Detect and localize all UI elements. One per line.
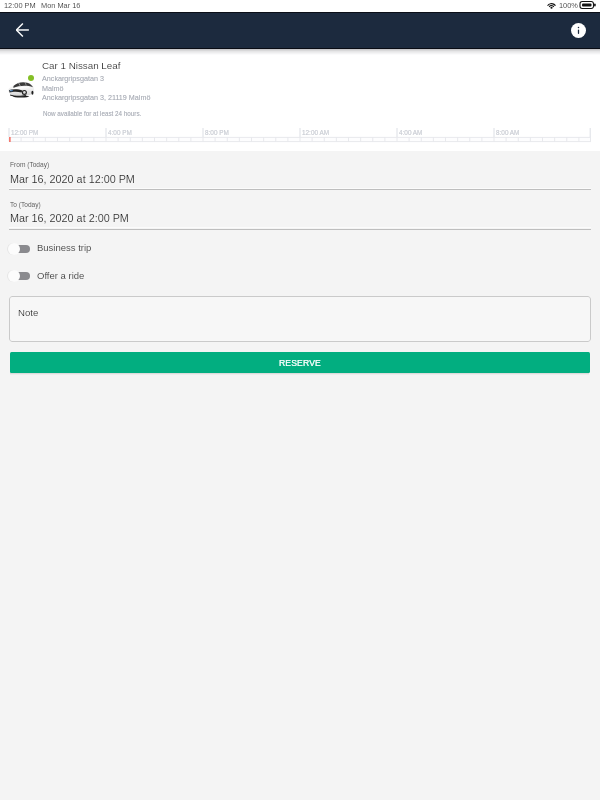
button[interactable]: Note	[9, 296, 591, 342]
button[interactable]: Business trip	[5, 239, 120, 259]
staticText: Offer a ride	[37, 270, 85, 281]
staticText: Mon Mar 16	[41, 1, 81, 9]
staticText: 12:00 PM	[11, 129, 39, 136]
staticText: 8:00 AM	[496, 129, 520, 136]
button[interactable]: Back	[8, 16, 36, 44]
button[interactable]: From (Today)	[9, 157, 591, 190]
button[interactable]: To (Today)	[9, 197, 591, 230]
button[interactable]: RESERVE	[10, 352, 590, 373]
staticText: To (Today)	[10, 201, 41, 208]
staticText: Business trip	[37, 242, 92, 253]
staticText: Note	[18, 307, 39, 318]
staticText: Anckargripsgatan 3, 21119 Malmö	[42, 93, 151, 101]
button[interactable]: Info	[565, 17, 591, 43]
staticText: 8:00 PM	[205, 129, 229, 136]
staticText: 12:00 PM	[4, 1, 36, 9]
staticText: 12:00 AM	[302, 129, 330, 136]
staticText: RESERVE	[279, 358, 321, 368]
staticText: From (Today)	[10, 161, 50, 168]
button[interactable]: Offer a ride	[5, 266, 120, 286]
staticText: Mar 16, 2020 at 12:00 PM	[10, 173, 135, 185]
staticText: 4:00 AM	[399, 129, 423, 136]
staticText: Anckargripsgatan 3	[42, 74, 104, 82]
staticText: Malmö	[42, 84, 64, 92]
staticText: 100%	[559, 1, 578, 9]
staticText: 4:00 PM	[108, 129, 132, 136]
staticText: Mar 16, 2020 at 2:00 PM	[10, 212, 129, 224]
staticText: Now available for at least 24 hours.	[43, 110, 142, 117]
staticText: Car 1 Nissan Leaf	[42, 60, 121, 71]
